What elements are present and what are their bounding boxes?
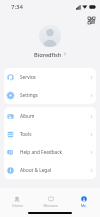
button[interactable]: Settings (4, 86, 96, 104)
staticText: Settings (20, 92, 38, 98)
staticText: Tools (20, 131, 32, 137)
button[interactable]: Scan QR code (88, 17, 95, 24)
button[interactable]: Bigredfish (32, 51, 69, 57)
staticText: 7:34 (11, 3, 23, 11)
staticText: Help and Feedback (20, 149, 62, 155)
staticText: Album (20, 113, 35, 119)
staticText: Bigredfish (34, 51, 62, 57)
staticText: Device (12, 203, 23, 207)
button[interactable]: Album (4, 107, 96, 125)
staticText: Service (20, 74, 36, 80)
button[interactable]: Help and Feedback (4, 143, 96, 161)
staticText: About & Legal (20, 167, 51, 173)
button[interactable]: Tools (4, 125, 96, 143)
button[interactable]: Service (4, 68, 96, 86)
button[interactable]: Device (0, 188, 34, 207)
staticText: Me (81, 203, 86, 207)
staticText: Message (43, 203, 58, 207)
button[interactable]: About & Legal (4, 161, 96, 179)
button[interactable]: Message (34, 188, 67, 207)
button[interactable]: Me (67, 188, 100, 207)
